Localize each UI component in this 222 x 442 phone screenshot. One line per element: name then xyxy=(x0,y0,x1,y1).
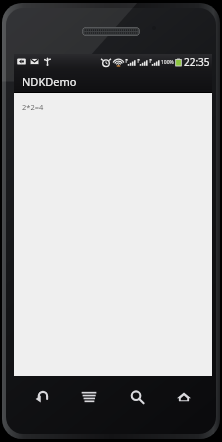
button[interactable]: Home xyxy=(164,380,204,414)
button[interactable]: Back xyxy=(22,380,62,414)
staticText: 22:35 xyxy=(184,55,210,69)
staticText: NDKDemo xyxy=(22,74,77,89)
staticText: 100% xyxy=(161,59,174,66)
button[interactable]: Search xyxy=(117,380,157,414)
staticText: 2*2=4 xyxy=(22,102,44,112)
button[interactable]: Menu xyxy=(69,380,109,414)
